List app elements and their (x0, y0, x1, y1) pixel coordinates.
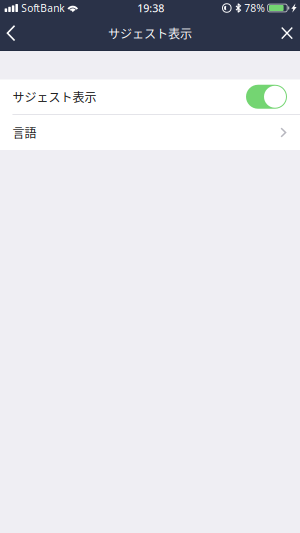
button[interactable]: Back (2, 16, 20, 50)
staticText: サジェスト表示 (13, 88, 97, 105)
staticText: 19:38 (137, 1, 164, 15)
staticText: SoftBank (21, 1, 64, 15)
staticText: 言語 (13, 124, 37, 141)
button[interactable]: Close (275, 16, 299, 51)
button[interactable]: 言語 (0, 115, 300, 150)
staticText: 78% (244, 1, 265, 15)
button[interactable]: サジェスト表示 (0, 79, 300, 114)
staticText: サジェスト表示 (108, 24, 192, 42)
